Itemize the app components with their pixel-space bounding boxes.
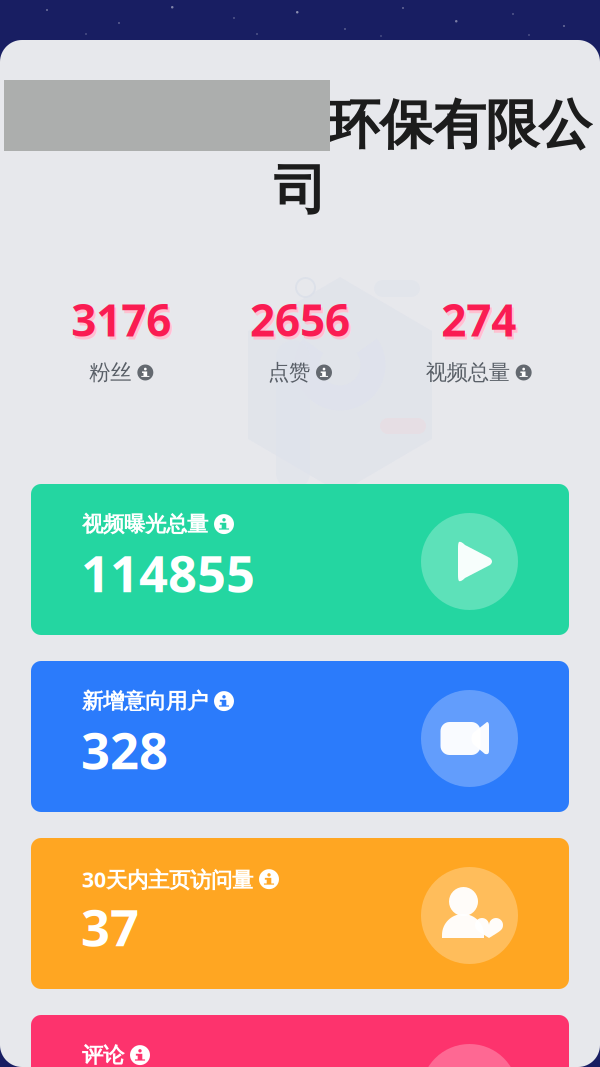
staticText: 114855: [81, 539, 255, 606]
staticText: 3176: [73, 293, 173, 352]
staticText: 274: [441, 290, 516, 349]
staticText: 274: [443, 293, 518, 352]
staticText: 某某某某某某环保有限公: [8, 92, 591, 158]
button[interactable]: 视频曝光总量: [31, 484, 569, 635]
staticText: 点赞: [268, 359, 310, 386]
staticText: 视频总量: [426, 359, 510, 386]
staticText: 视频曝光总量: [82, 511, 208, 537]
staticText: 粉丝: [89, 359, 131, 386]
staticText: 328: [81, 716, 168, 783]
button[interactable]: 新增意向用户: [31, 661, 569, 812]
button[interactable]: 30天内主页访问量: [31, 838, 569, 989]
staticText: 3176: [71, 290, 171, 349]
button[interactable]: 评论: [31, 1015, 569, 1067]
staticText: 新增意向用户: [82, 688, 208, 714]
staticText: 评论: [82, 1042, 124, 1067]
staticText: 2656: [252, 293, 352, 352]
staticText: 司: [273, 157, 326, 223]
staticText: 37: [81, 893, 139, 960]
staticText: 2656: [250, 290, 350, 349]
staticText: 30天内主页访问量: [82, 865, 253, 893]
